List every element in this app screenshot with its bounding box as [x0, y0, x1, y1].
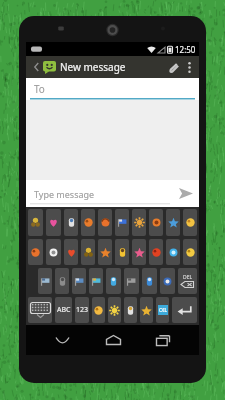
- staticText: 123: [76, 305, 89, 315]
- button[interactable]: Back: [29, 60, 43, 74]
- button[interactable]: Delete: [178, 268, 197, 294]
- button[interactable]: Hide keyboard: [47, 325, 77, 355]
- button[interactable]: Enter: [172, 297, 197, 323]
- button[interactable]: 123: [75, 297, 89, 323]
- button[interactable]: Emoji: [132, 209, 146, 236]
- button[interactable]: Emoji: [108, 297, 121, 323]
- button[interactable]: Send: [172, 180, 199, 207]
- button[interactable]: Emoji: [156, 297, 169, 323]
- button[interactable]: Emoji: [140, 297, 153, 323]
- button[interactable]: Emoji: [106, 268, 121, 294]
- button[interactable]: Emoji: [81, 209, 95, 236]
- button[interactable]: Emoji: [160, 268, 175, 294]
- button[interactable]: Emoji: [124, 297, 137, 323]
- button[interactable]: More options: [182, 60, 196, 74]
- button[interactable]: Emoji: [28, 209, 43, 236]
- button[interactable]: ABC: [55, 297, 72, 323]
- button[interactable]: Emoji: [46, 209, 61, 236]
- button[interactable]: Emoji: [92, 297, 105, 323]
- button[interactable]: Emoji: [72, 268, 86, 294]
- button[interactable]: Keyboard: [28, 297, 52, 323]
- button[interactable]: Emoji: [132, 239, 146, 265]
- button[interactable]: Emoji: [166, 209, 180, 236]
- button[interactable]: Emoji: [183, 209, 197, 236]
- staticText: 12:50: [175, 44, 196, 55]
- button[interactable]: Emoji: [98, 209, 112, 236]
- button[interactable]: Emoji: [81, 239, 95, 265]
- button[interactable]: Emoji: [149, 239, 163, 265]
- button[interactable]: Home: [98, 325, 128, 355]
- staticText: DEL: [183, 274, 193, 281]
- button[interactable]: Emoji: [38, 268, 52, 294]
- button[interactable]: Emoji: [115, 209, 129, 236]
- staticText: ABC: [57, 305, 71, 315]
- staticText: OIL: [159, 307, 168, 314]
- button[interactable]: To: [26, 78, 199, 100]
- button[interactable]: Emoji: [89, 268, 103, 294]
- staticText: Type message: [34, 188, 95, 200]
- button[interactable]: Emoji: [28, 239, 43, 265]
- button[interactable]: Emoji: [183, 239, 197, 265]
- button[interactable]: Emoji: [64, 239, 78, 265]
- button[interactable]: Emoji: [115, 239, 129, 265]
- button[interactable]: Emoji: [46, 239, 61, 265]
- button[interactable]: Attach: [164, 58, 182, 76]
- button[interactable]: Emoji: [142, 268, 157, 294]
- button[interactable]: Emoji: [98, 239, 112, 265]
- staticText: New message: [60, 60, 126, 74]
- button[interactable]: Type message: [26, 180, 172, 207]
- staticText: To: [34, 82, 45, 96]
- button[interactable]: Emoji: [55, 268, 69, 294]
- button[interactable]: Emoji: [166, 239, 180, 265]
- button[interactable]: Emoji: [124, 268, 139, 294]
- button[interactable]: Emoji: [64, 209, 78, 236]
- button[interactable]: Recents: [148, 325, 178, 355]
- button[interactable]: Emoji: [149, 209, 163, 236]
